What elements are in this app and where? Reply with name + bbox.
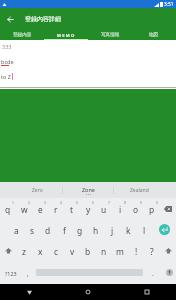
button[interactable]: k bbox=[120, 219, 136, 240]
button[interactable]: 1 bbox=[0, 198, 16, 219]
button[interactable]: s bbox=[24, 219, 40, 240]
staticText: q bbox=[5, 204, 11, 215]
button[interactable]: d bbox=[40, 219, 56, 240]
staticText: t bbox=[70, 204, 74, 215]
staticText: . bbox=[152, 269, 154, 278]
button[interactable]: Back bbox=[0, 9, 20, 29]
staticText: ! bbox=[135, 246, 138, 257]
staticText: v bbox=[70, 246, 75, 257]
staticText: 0 bbox=[156, 200, 158, 205]
staticText: l bbox=[143, 225, 146, 236]
staticText: 地図 bbox=[149, 32, 159, 38]
staticText: d bbox=[45, 225, 51, 236]
button[interactable]: Backspace bbox=[160, 198, 176, 219]
button[interactable]: MEMO bbox=[44, 29, 88, 40]
button[interactable]: Enter bbox=[152, 219, 176, 240]
staticText: w bbox=[21, 204, 28, 215]
staticText: s bbox=[30, 225, 35, 236]
staticText: ? bbox=[150, 246, 154, 257]
button[interactable]: c bbox=[48, 240, 64, 261]
staticText: 登録内容 bbox=[13, 32, 32, 38]
button[interactable]: x bbox=[32, 240, 48, 261]
staticText: i bbox=[119, 204, 122, 215]
staticText: x bbox=[38, 246, 43, 257]
button[interactable]: 写真情報 bbox=[88, 29, 132, 40]
staticText: j bbox=[111, 225, 114, 236]
staticText: 8 bbox=[124, 200, 126, 205]
button[interactable]: ?123 bbox=[0, 261, 22, 284]
button[interactable]: b bbox=[80, 240, 96, 261]
staticText: a bbox=[14, 225, 19, 236]
staticText: e bbox=[38, 204, 43, 215]
button[interactable]: , bbox=[22, 261, 33, 284]
button[interactable]: Home bbox=[58, 284, 117, 300]
button[interactable]: g bbox=[72, 219, 88, 240]
button[interactable]: 9 bbox=[128, 198, 144, 219]
staticText: Zealand bbox=[130, 187, 149, 194]
staticText: 7 bbox=[108, 200, 110, 205]
staticText: , bbox=[27, 269, 29, 278]
staticText: 写真情報 bbox=[101, 32, 120, 38]
staticText: 登録内容詳細 bbox=[25, 15, 61, 23]
button[interactable]: Zealand bbox=[114, 182, 164, 198]
staticText: c bbox=[54, 246, 59, 257]
button[interactable]: Recents bbox=[117, 284, 176, 300]
button[interactable]: m bbox=[112, 240, 128, 261]
staticText: bcde bbox=[1, 58, 14, 65]
button[interactable]: Shift bbox=[0, 240, 16, 261]
button[interactable]: 2 bbox=[16, 198, 32, 219]
staticText: m bbox=[116, 246, 124, 257]
staticText: 2 bbox=[28, 200, 30, 205]
staticText: ?123 bbox=[5, 270, 17, 277]
staticText: 333 bbox=[2, 43, 12, 50]
staticText: z bbox=[22, 246, 26, 257]
staticText: h bbox=[93, 225, 99, 236]
button[interactable]: 6 bbox=[80, 198, 96, 219]
button[interactable]: ? bbox=[144, 240, 160, 261]
staticText: g bbox=[77, 225, 83, 236]
button[interactable]: 地図 bbox=[132, 29, 176, 40]
staticText: 3:51 bbox=[164, 1, 174, 8]
button[interactable]: l bbox=[136, 219, 152, 240]
button[interactable]: Back bbox=[0, 284, 58, 300]
button[interactable]: Shift bbox=[160, 240, 176, 261]
staticText: y bbox=[86, 204, 91, 215]
staticText: 9 bbox=[140, 200, 142, 205]
staticText: 4 bbox=[60, 200, 62, 205]
staticText: 3 bbox=[44, 200, 46, 205]
button[interactable]: v bbox=[64, 240, 80, 261]
staticText: k bbox=[126, 225, 131, 236]
button[interactable]: 8 bbox=[112, 198, 128, 219]
button[interactable]: 7 bbox=[96, 198, 112, 219]
button[interactable]: j bbox=[104, 219, 120, 240]
button[interactable]: Zero bbox=[13, 182, 62, 198]
button[interactable]: f bbox=[56, 219, 72, 240]
staticText: r bbox=[54, 204, 58, 215]
button[interactable]: ! bbox=[128, 240, 144, 261]
staticText: 1 bbox=[12, 200, 14, 205]
button[interactable]: 4 bbox=[48, 198, 64, 219]
button[interactable]: 登録内容 bbox=[0, 29, 44, 40]
staticText: to Z bbox=[1, 73, 11, 80]
button[interactable]: . bbox=[143, 261, 162, 284]
staticText: f bbox=[63, 225, 66, 236]
staticText: o bbox=[133, 204, 139, 215]
staticText: Zone bbox=[82, 186, 95, 193]
button[interactable]: 5 bbox=[64, 198, 80, 219]
staticText: Zero bbox=[32, 187, 43, 194]
button[interactable]: 3 bbox=[32, 198, 48, 219]
button[interactable]: z bbox=[16, 240, 32, 261]
staticText: u bbox=[101, 204, 107, 215]
button[interactable]: Zone bbox=[63, 182, 113, 198]
button[interactable]: h bbox=[88, 219, 104, 240]
staticText: 6 bbox=[92, 200, 94, 205]
button[interactable]: Voice input bbox=[162, 261, 176, 284]
button[interactable]: a bbox=[8, 219, 24, 240]
staticText: b bbox=[85, 246, 91, 257]
staticText: p bbox=[149, 204, 155, 215]
button[interactable]: n bbox=[96, 240, 112, 261]
button[interactable]: 0 bbox=[144, 198, 160, 219]
staticText: MEMO bbox=[57, 32, 76, 38]
staticText: 5 bbox=[76, 200, 78, 205]
